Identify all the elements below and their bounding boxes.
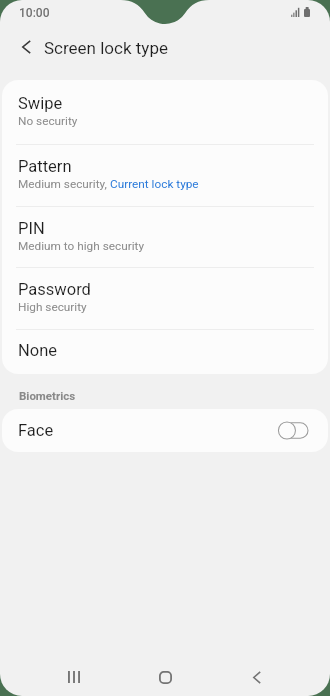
button[interactable]: Swipe bbox=[2, 80, 328, 144]
button[interactable]: Password bbox=[2, 268, 328, 329]
staticText: Password bbox=[18, 280, 91, 299]
staticText: High security bbox=[18, 300, 87, 314]
button[interactable]: Back bbox=[211, 658, 302, 696]
staticText: Current lock type bbox=[110, 177, 199, 191]
button[interactable]: Home bbox=[120, 658, 211, 696]
button[interactable]: PIN bbox=[2, 207, 328, 267]
staticText: None bbox=[18, 341, 58, 360]
button[interactable]: Recent apps bbox=[28, 658, 120, 696]
staticText: Screen lock type bbox=[44, 38, 168, 58]
staticText: 10:00 bbox=[19, 6, 50, 20]
staticText: Pattern bbox=[18, 157, 72, 176]
staticText: No security bbox=[18, 114, 78, 128]
staticText: Face bbox=[18, 421, 54, 440]
staticText: PIN bbox=[18, 219, 45, 238]
button[interactable]: None bbox=[2, 330, 328, 374]
staticText: Medium security, bbox=[18, 177, 110, 191]
staticText: Swipe bbox=[18, 94, 63, 113]
staticText: Biometrics bbox=[19, 389, 76, 402]
staticText: Medium to high security bbox=[18, 239, 144, 253]
button[interactable]: Face bbox=[2, 409, 328, 452]
button[interactable]: Navigate up bbox=[0, 28, 44, 70]
button[interactable]: Pattern bbox=[2, 145, 328, 206]
